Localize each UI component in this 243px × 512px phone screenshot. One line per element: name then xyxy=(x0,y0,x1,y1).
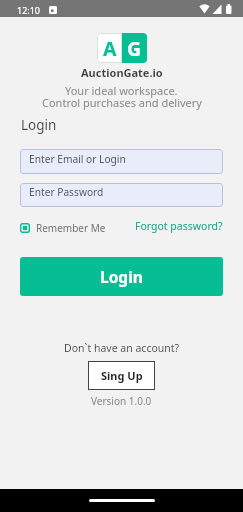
staticText: Version 1.0.0 xyxy=(91,394,152,408)
staticText: AuctionGate.io xyxy=(81,65,163,80)
button[interactable]: Enter Password xyxy=(20,183,223,207)
staticText: Your ideal workspace. xyxy=(65,83,178,98)
staticText: A xyxy=(103,35,117,62)
button[interactable]: Login xyxy=(20,257,223,296)
button[interactable]: Sing Up xyxy=(88,361,155,390)
staticText: Control purchases and delivery xyxy=(42,95,202,110)
staticText: Don`t have an account? xyxy=(64,341,180,355)
staticText: Enter Password xyxy=(29,185,104,199)
staticText: Login xyxy=(100,266,143,287)
staticText: Enter Email or Login xyxy=(29,152,126,166)
staticText: 12:10 xyxy=(17,4,41,16)
staticText: Remember Me xyxy=(36,221,106,235)
button[interactable]: Enter Email or Login xyxy=(20,149,223,174)
staticText: G xyxy=(127,35,142,62)
button[interactable]: Forgot password? xyxy=(135,219,223,233)
button[interactable]: Remember Me xyxy=(20,221,106,235)
staticText: Login xyxy=(21,116,57,134)
staticText: Sing Up xyxy=(101,368,143,383)
